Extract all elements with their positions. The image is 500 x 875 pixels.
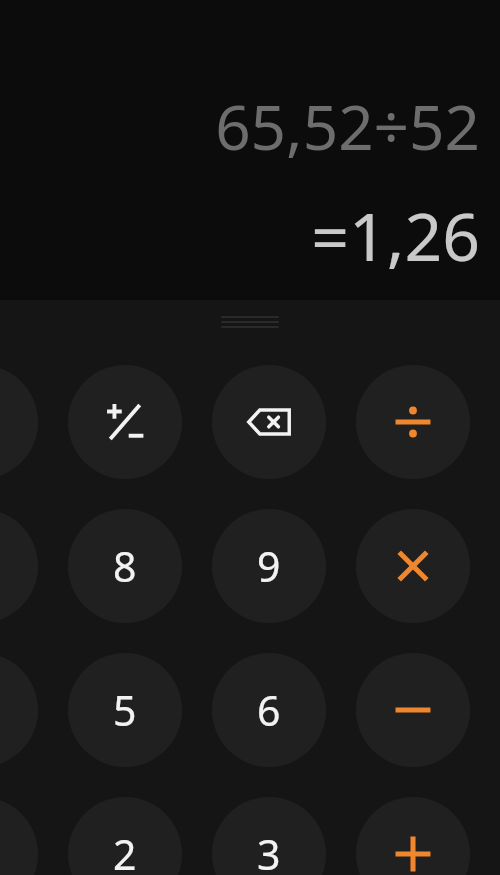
button[interactable]: 6	[212, 653, 326, 767]
button[interactable]: 1	[0, 797, 38, 875]
button[interactable]: Backspace	[212, 365, 326, 479]
button[interactable]	[221, 316, 279, 328]
button[interactable]: 7	[0, 365, 38, 479]
button[interactable]: Multiply	[356, 509, 470, 623]
staticText: 6	[257, 682, 281, 738]
button[interactable]: Divide	[356, 365, 470, 479]
staticText: 65,52÷52	[215, 84, 480, 168]
button[interactable]: 8	[68, 509, 182, 623]
button[interactable]: Plus minus sign	[68, 365, 182, 479]
button[interactable]: Minus	[356, 653, 470, 767]
staticText: 5	[113, 682, 137, 738]
button[interactable]: 5	[68, 653, 182, 767]
button[interactable]: 4	[0, 653, 38, 767]
staticText: 8	[113, 538, 137, 594]
staticText: 2	[113, 826, 137, 875]
button[interactable]: 2	[68, 797, 182, 875]
button[interactable]: 7	[0, 509, 38, 623]
button[interactable]: 3	[212, 797, 326, 875]
staticText: 9	[257, 538, 281, 594]
staticText: =1,26	[311, 190, 480, 280]
button[interactable]: 9	[212, 509, 326, 623]
button[interactable]: Plus	[356, 797, 470, 875]
staticText: 3	[257, 826, 281, 875]
